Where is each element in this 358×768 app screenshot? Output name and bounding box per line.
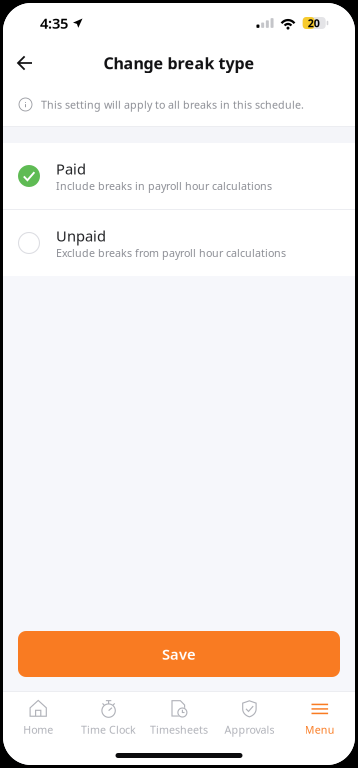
button[interactable]: Paid — [3, 143, 355, 209]
button[interactable]: Menu — [285, 692, 355, 738]
staticText: 4:35 — [40, 13, 68, 33]
button[interactable]: Back — [3, 43, 45, 82]
button[interactable]: Time Clock — [73, 692, 144, 738]
button[interactable]: Unpaid — [3, 210, 355, 276]
staticText: Timesheets — [150, 722, 208, 737]
button[interactable]: Approvals — [214, 692, 285, 738]
staticText: 20 — [308, 16, 320, 30]
staticText: Unpaid — [56, 226, 106, 246]
staticText: Menu — [305, 722, 335, 737]
button[interactable]: Home — [3, 692, 73, 738]
staticText: Paid — [56, 159, 86, 179]
staticText: This setting will apply to all breaks in… — [41, 97, 304, 112]
staticText: Approvals — [224, 722, 274, 737]
staticText: Time Clock — [81, 722, 136, 737]
staticText: Home — [23, 722, 53, 737]
staticText: Save — [162, 644, 196, 664]
button[interactable]: Save — [18, 631, 340, 677]
button[interactable]: Timesheets — [144, 692, 214, 738]
staticText: Include breaks in payroll hour calculati… — [56, 179, 272, 193]
staticText: Change break type — [103, 52, 254, 74]
staticText: Exclude breaks from payroll hour calcula… — [56, 246, 286, 260]
